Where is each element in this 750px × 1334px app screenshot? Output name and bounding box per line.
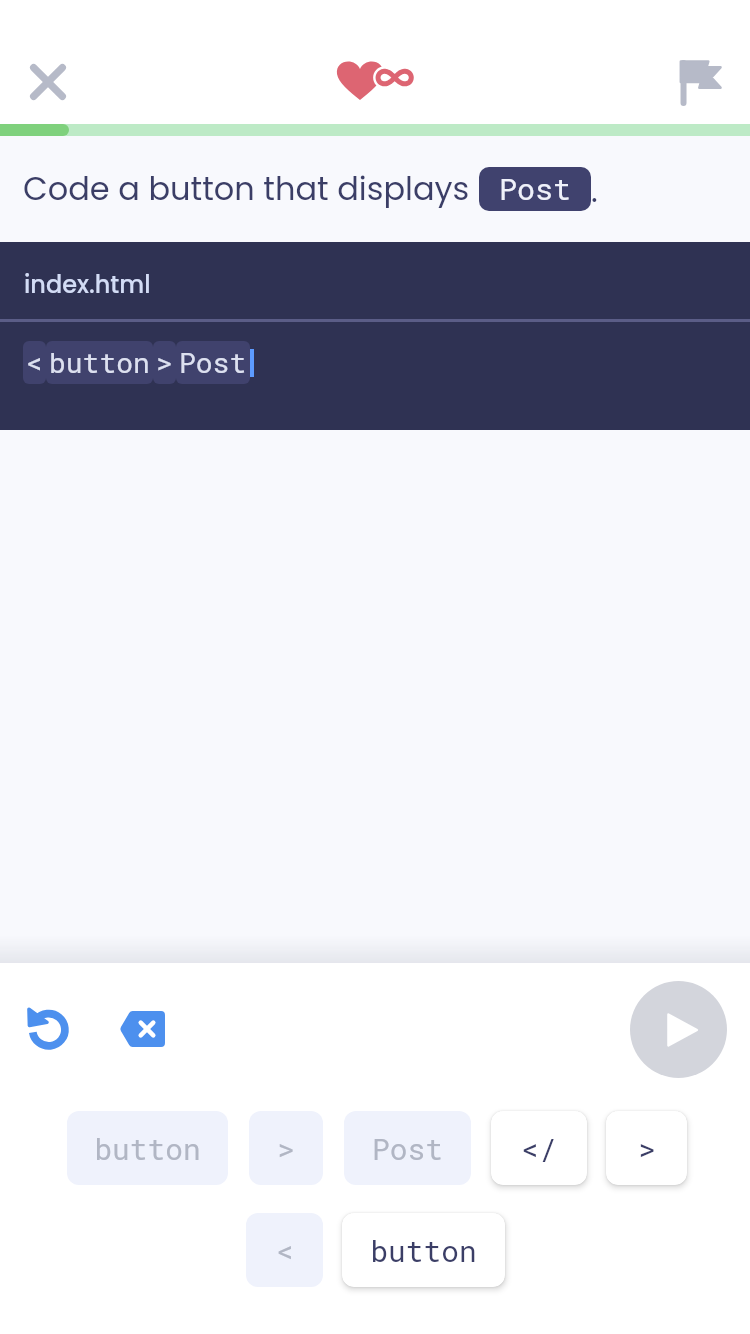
staticText: > <box>277 1129 295 1168</box>
button[interactable]: button <box>342 1213 505 1287</box>
staticText: > <box>156 344 173 381</box>
button[interactable]: Unlimited lives <box>337 61 410 100</box>
button[interactable]: Post <box>344 1111 471 1185</box>
button[interactable]: </ <box>491 1111 587 1185</box>
staticText: button <box>370 1231 477 1270</box>
staticText: Code a button that displays <box>23 166 470 211</box>
button[interactable]: Backspace <box>110 997 174 1061</box>
staticText: index.html <box>24 268 151 302</box>
staticText: < <box>26 344 43 381</box>
button[interactable]: Reset <box>20 1001 76 1057</box>
staticText: > <box>638 1129 656 1168</box>
staticText: Post <box>179 344 247 381</box>
button[interactable]: > <box>249 1111 323 1185</box>
button[interactable]: button <box>67 1111 228 1185</box>
button[interactable]: Report <box>668 48 736 116</box>
staticText: </ <box>521 1129 557 1168</box>
button[interactable]: Run <box>630 981 727 1078</box>
staticText: < <box>276 1231 294 1270</box>
staticText: Post <box>499 169 572 209</box>
staticText: button <box>49 344 150 381</box>
staticText: button <box>94 1129 201 1168</box>
staticText: . <box>591 168 598 213</box>
staticText: Post <box>372 1129 443 1168</box>
button[interactable]: > <box>606 1111 687 1185</box>
button[interactable]: < <box>246 1213 323 1287</box>
button[interactable]: Close <box>14 48 82 116</box>
